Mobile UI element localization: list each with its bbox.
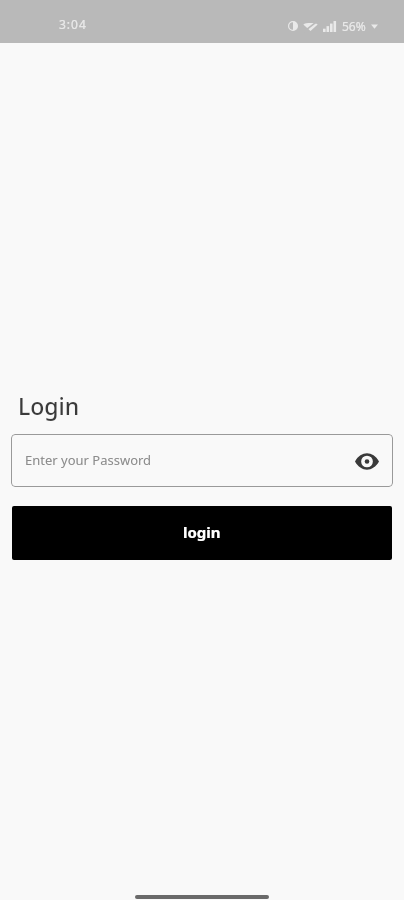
staticText: 56% <box>342 18 366 34</box>
staticText: login <box>183 522 221 542</box>
button[interactable]: Enter your Password <box>11 434 393 487</box>
button[interactable]: login <box>12 506 392 560</box>
button[interactable]: Show password <box>353 447 381 475</box>
staticText: 3:04 <box>59 16 87 32</box>
staticText: Enter your Password <box>25 451 152 469</box>
staticText: Login <box>18 390 80 421</box>
